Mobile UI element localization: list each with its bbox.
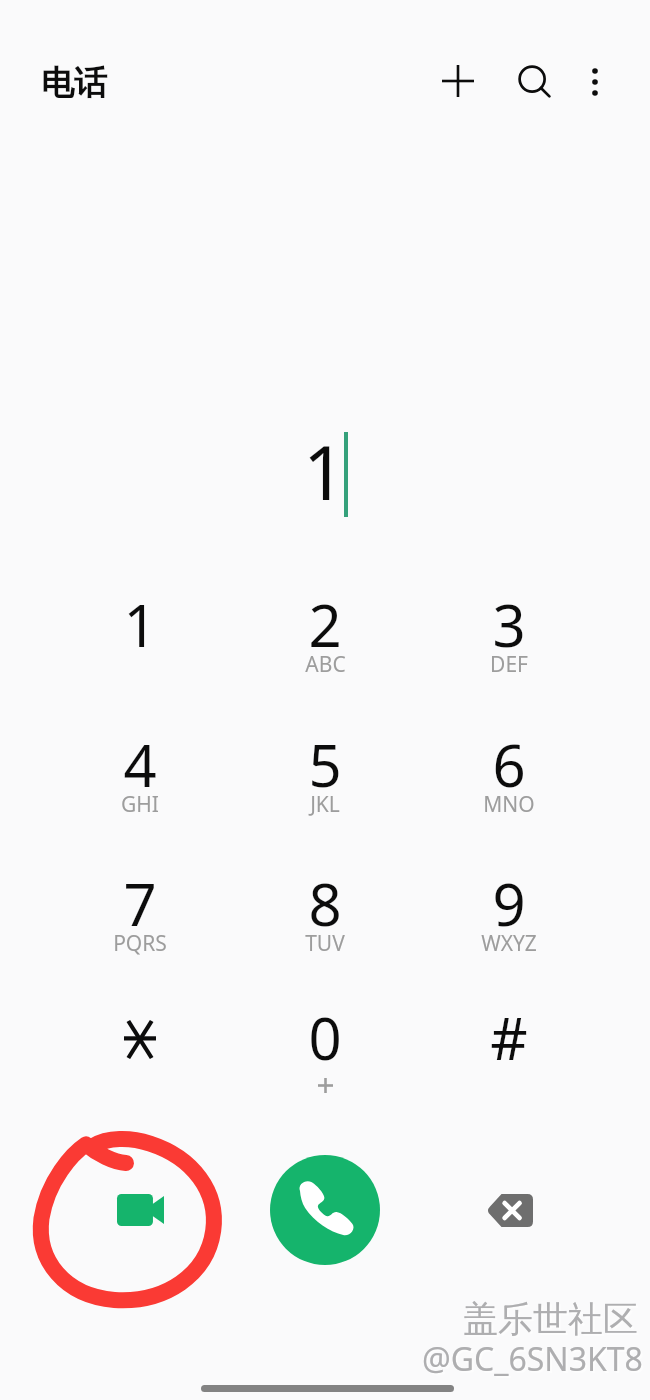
staticText: PQRS — [113, 929, 167, 958]
staticText: 1 — [123, 585, 157, 664]
staticText: # — [490, 998, 528, 1077]
button[interactable] — [48, 998, 232, 1122]
button[interactable]: 7 — [48, 864, 232, 988]
staticText: 3 — [492, 585, 526, 664]
button[interactable]: 5 — [233, 725, 417, 849]
staticText: TUV — [305, 929, 345, 958]
button[interactable]: Backspace — [464, 1165, 554, 1255]
staticText: 2 — [308, 585, 342, 664]
button[interactable]: 0 — [233, 998, 417, 1122]
staticText: 盖乐世社区 — [463, 1297, 638, 1341]
staticText: 8 — [308, 864, 342, 943]
staticText: 9 — [492, 864, 526, 943]
staticText: 电话 — [41, 62, 107, 104]
button[interactable]: Video call — [95, 1165, 185, 1255]
button[interactable]: More options — [572, 59, 618, 105]
button[interactable]: 9 — [417, 864, 601, 988]
button[interactable]: # — [417, 998, 601, 1122]
staticText: WXYZ — [481, 929, 537, 958]
button[interactable]: 2 — [233, 585, 417, 709]
staticText: 4 — [123, 725, 157, 804]
staticText: GHI — [121, 790, 159, 819]
staticText: ABC — [305, 650, 346, 679]
button[interactable]: Add contact — [428, 51, 488, 111]
staticText: @GC_6SN3KT8 — [422, 1337, 643, 1381]
staticText: 5 — [308, 725, 342, 804]
button[interactable]: 3 — [417, 585, 601, 709]
button[interactable]: 6 — [417, 725, 601, 849]
button[interactable]: 8 — [233, 864, 417, 988]
staticText: @GC_6SN3KT8 — [424, 1339, 645, 1383]
staticText: DEF — [490, 650, 528, 679]
staticText: MNO — [483, 790, 535, 819]
staticText: 盖乐世社区 — [465, 1299, 640, 1343]
staticText: 0 — [308, 998, 342, 1077]
button[interactable]: 1 — [48, 585, 232, 709]
button[interactable]: 4 — [48, 725, 232, 849]
staticText: 1 — [303, 421, 346, 522]
staticText: JKL — [310, 790, 340, 819]
staticText: 6 — [492, 725, 526, 804]
staticText: 7 — [123, 864, 157, 943]
button[interactable]: Call — [270, 1155, 380, 1265]
button[interactable]: Search — [505, 52, 565, 112]
